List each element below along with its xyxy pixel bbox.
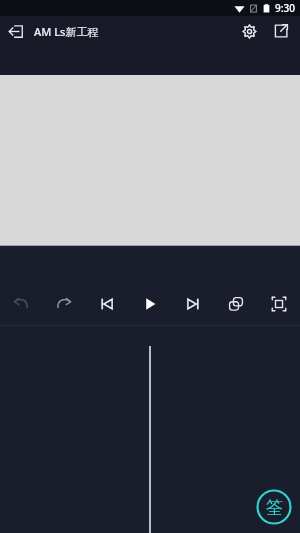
button[interactable]: Add media bbox=[256, 489, 292, 525]
button[interactable]: Play bbox=[128, 291, 171, 317]
button[interactable]: Skip to start bbox=[85, 291, 128, 317]
button[interactable]: Back bbox=[0, 16, 30, 46]
staticText: 筌 bbox=[266, 497, 283, 518]
button[interactable]: Loop bbox=[214, 291, 257, 317]
button[interactable]: Export bbox=[266, 16, 296, 46]
button[interactable]: Fit to screen bbox=[257, 291, 300, 317]
button[interactable]: Skip to end bbox=[171, 291, 214, 317]
button[interactable]: Redo bbox=[42, 291, 85, 317]
button[interactable]: Undo bbox=[0, 291, 42, 317]
staticText: AM Ls新工程 bbox=[34, 24, 99, 39]
staticText: 9:30 bbox=[275, 1, 295, 15]
button[interactable]: Settings bbox=[234, 16, 264, 46]
